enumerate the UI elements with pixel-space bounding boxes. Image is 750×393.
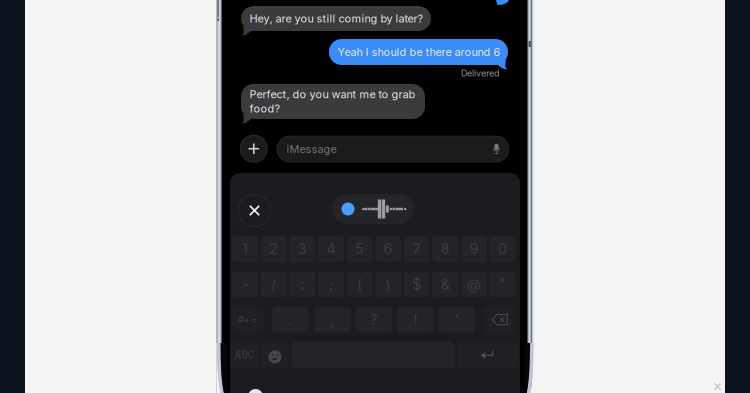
staticText: 0 <box>498 240 507 257</box>
button[interactable]: Close dictation <box>238 194 270 226</box>
button[interactable]: 6 <box>375 236 401 262</box>
staticText: 9 <box>469 240 478 257</box>
button[interactable]: $ <box>404 271 430 297</box>
button[interactable]: ? <box>355 307 392 333</box>
staticText: " <box>499 276 506 293</box>
button[interactable]: 2 <box>261 236 287 262</box>
staticText: 8 <box>441 240 450 257</box>
staticText: 2 <box>269 240 278 257</box>
staticText: @ <box>467 276 481 293</box>
button[interactable]: 1 <box>232 236 258 262</box>
staticText: ? <box>370 311 377 328</box>
staticText: 7 <box>413 240 421 257</box>
staticText: ( <box>357 276 362 293</box>
staticText: Yeah I should be there around 6 <box>337 45 500 59</box>
staticText: $ <box>412 276 421 293</box>
button[interactable]: ( <box>346 271 373 297</box>
staticText: 6 <box>384 240 393 257</box>
button[interactable]: & <box>432 271 458 297</box>
staticText: , <box>330 311 334 328</box>
staticText: - <box>242 276 248 293</box>
button[interactable]: 4 <box>318 236 344 262</box>
button[interactable]: Emoji <box>261 342 289 368</box>
button[interactable]: Return <box>457 342 517 368</box>
staticText: ABC <box>234 349 254 361</box>
staticText: ! <box>413 311 417 328</box>
staticText: ’ <box>455 311 459 328</box>
button[interactable]: / <box>261 271 287 297</box>
button[interactable]: Delete <box>484 307 516 333</box>
button[interactable]: 9 <box>461 236 487 262</box>
button[interactable]: Add attachment <box>240 135 267 162</box>
staticText: 5 <box>355 240 364 257</box>
button[interactable]: Close <box>714 383 721 390</box>
button[interactable]: ) <box>375 271 401 297</box>
staticText: #+= <box>238 314 258 325</box>
button[interactable]: 5 <box>346 236 373 262</box>
button[interactable]: 3 <box>289 236 315 262</box>
button[interactable]: ABC <box>230 342 258 368</box>
staticText: . <box>289 311 293 328</box>
button[interactable]: #+= <box>232 307 264 333</box>
staticText: : <box>300 276 304 293</box>
button[interactable]: 0 <box>489 236 516 262</box>
staticText: Hey, are you still coming by later? <box>249 12 423 25</box>
button[interactable]: iMessage text field <box>277 136 509 162</box>
staticText: 1 <box>242 240 248 257</box>
staticText: 4 <box>326 240 335 257</box>
staticText: & <box>441 276 450 293</box>
staticText: iMessage <box>286 142 336 156</box>
button[interactable]: @ <box>461 271 487 297</box>
button[interactable]: 7 <box>404 236 430 262</box>
staticText: ; <box>329 276 333 293</box>
staticText: ) <box>386 276 391 293</box>
staticText: Perfect, do you want me to grab food? <box>249 88 415 115</box>
staticText: Delivered <box>461 68 499 79</box>
staticText: / <box>271 276 276 293</box>
staticText: 3 <box>298 240 307 257</box>
button[interactable]: 8 <box>432 236 458 262</box>
